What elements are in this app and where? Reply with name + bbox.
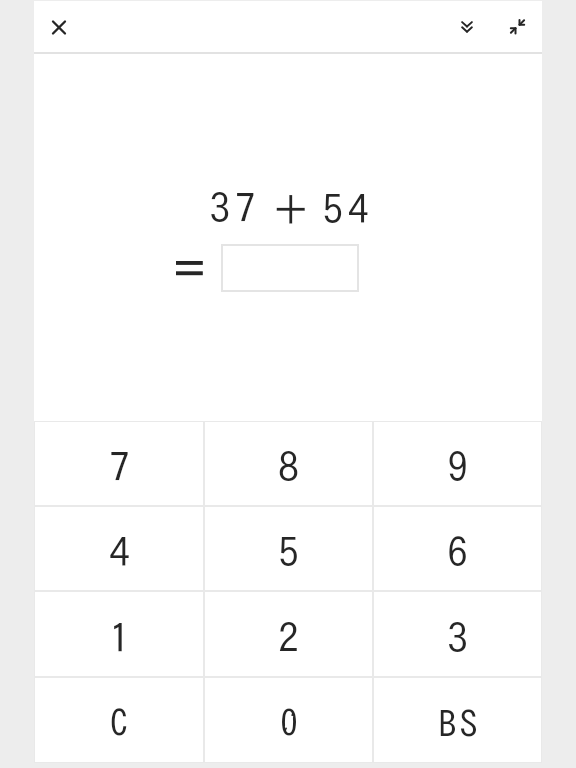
button[interactable]: 4 xyxy=(34,506,204,591)
staticText: 7 xyxy=(109,446,130,487)
staticText: 0 xyxy=(280,705,298,741)
staticText: C xyxy=(110,705,128,741)
button[interactable]: 7 xyxy=(34,421,204,506)
button[interactable]: C xyxy=(34,677,204,763)
staticText: 9 xyxy=(447,446,468,487)
staticText: 2 xyxy=(278,617,299,658)
button[interactable]: 1 xyxy=(34,591,204,677)
button[interactable]: 9 xyxy=(373,421,542,506)
staticText: 8 xyxy=(278,446,299,487)
button[interactable]: 0 xyxy=(204,677,373,763)
button[interactable]: 2 xyxy=(204,591,373,677)
staticText: 37 xyxy=(207,187,258,228)
staticText: BS xyxy=(437,705,479,742)
staticText: 1 xyxy=(109,617,130,658)
staticText: ＋ xyxy=(270,189,311,230)
button[interactable]: 8 xyxy=(204,421,373,506)
staticText: 4 xyxy=(109,531,130,572)
button[interactable]: 6 xyxy=(373,506,542,591)
button[interactable] xyxy=(446,5,490,49)
staticText: 54 xyxy=(320,188,371,229)
staticText: 3 xyxy=(447,617,468,658)
button[interactable]: 5 xyxy=(204,506,373,591)
staticText: 6 xyxy=(447,531,468,572)
button[interactable] xyxy=(37,5,81,49)
staticText: 5 xyxy=(278,531,299,572)
button[interactable] xyxy=(221,244,359,292)
button[interactable] xyxy=(496,5,540,49)
button[interactable]: 3 xyxy=(373,591,542,677)
button[interactable]: BS xyxy=(373,677,542,763)
